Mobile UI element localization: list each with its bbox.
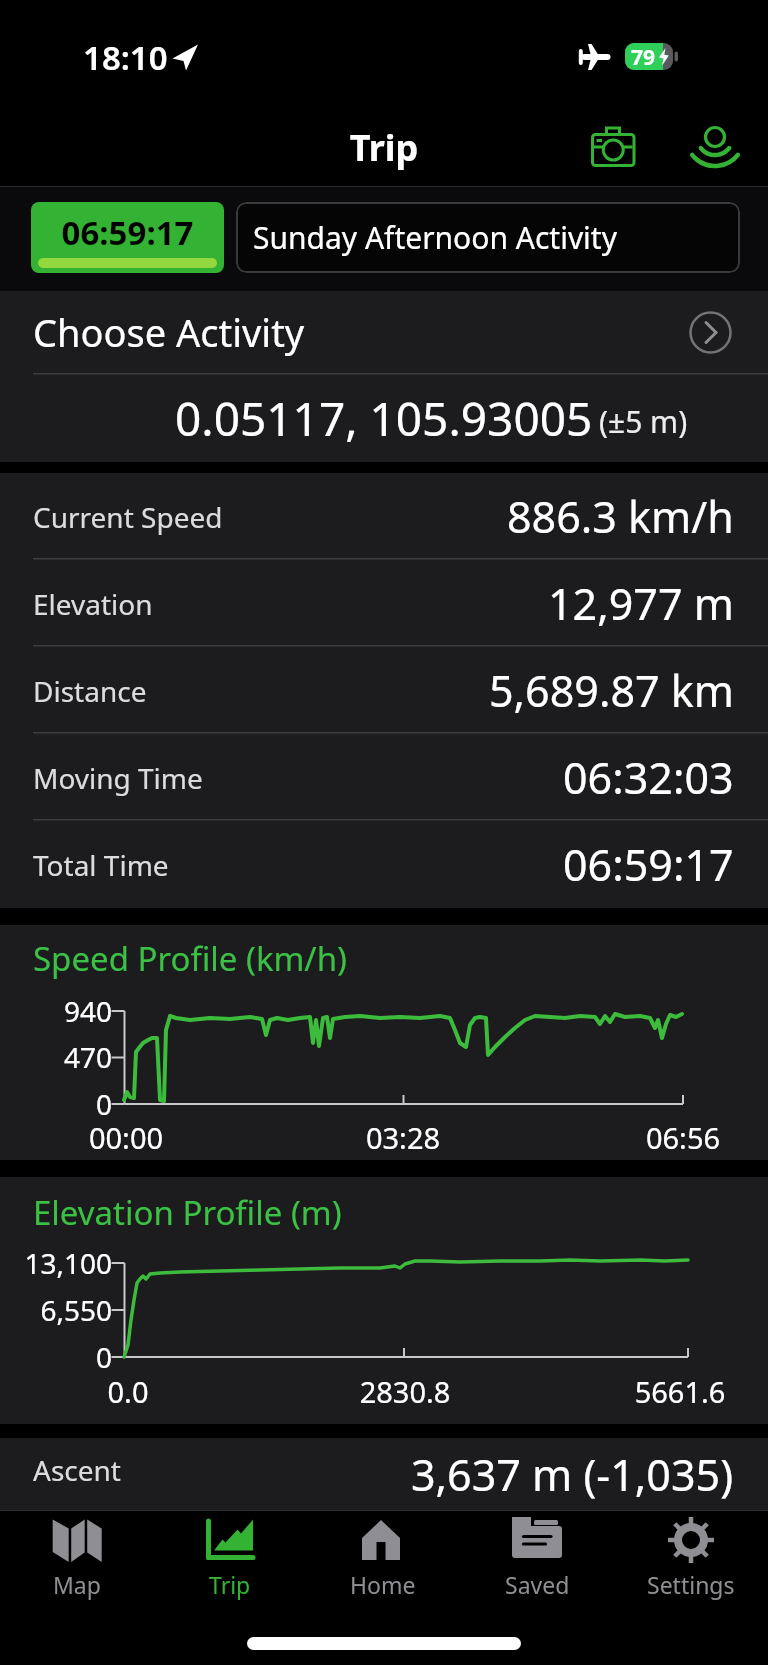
button[interactable]: Choose Activity (0, 291, 768, 374)
staticText: 470 (0, 1038, 112, 1076)
button[interactable]: 06:59:17 (31, 202, 224, 273)
button[interactable]: Settings (614, 1516, 768, 1600)
staticText: Trip (284, 123, 484, 172)
staticText: 0 (0, 1085, 112, 1123)
staticText: 5,689.87 km (489, 661, 734, 720)
staticText: Sunday Afternoon Activity (253, 217, 617, 258)
staticText: Distance (33, 672, 333, 710)
button[interactable]: Home (306, 1516, 460, 1600)
button[interactable] (692, 115, 738, 171)
staticText: 0 (0, 1338, 112, 1376)
staticText: Moving Time (33, 759, 333, 797)
button[interactable]: Map (0, 1516, 153, 1600)
button[interactable] (591, 126, 635, 166)
button[interactable]: Trip (153, 1516, 306, 1600)
staticText: Saved (505, 1569, 570, 1600)
staticText: 2830.8 (355, 1372, 455, 1411)
staticText: 0.05117, 105.93005 (175, 387, 593, 450)
staticText: 18:10 (83, 35, 243, 80)
staticText: 13,100 (0, 1244, 112, 1282)
staticText: Elevation (33, 585, 333, 623)
staticText: 6,550 (0, 1291, 112, 1329)
staticText: 06:59:17 (31, 210, 224, 255)
staticText: Map (53, 1569, 101, 1600)
staticText: 886.3 km/h (507, 487, 734, 546)
staticText: 06:56 (645, 1118, 721, 1157)
staticText: Elevation Profile (m) (33, 1190, 533, 1235)
staticText: Ascent (33, 1451, 333, 1489)
staticText: 940 (0, 992, 112, 1030)
button[interactable]: Sunday Afternoon Activity (236, 202, 740, 273)
staticText: Current Speed (33, 498, 333, 536)
staticText: Total Time (33, 846, 333, 884)
staticText: 03:28 (365, 1118, 441, 1157)
staticText: 0.0 (90, 1372, 166, 1411)
staticText: 5661.6 (630, 1372, 730, 1411)
staticText: (±5 m) (599, 401, 688, 442)
staticText: 12,977 m (548, 574, 734, 633)
staticText: Trip (209, 1569, 251, 1600)
staticText: 79 (627, 43, 659, 72)
staticText: Settings (647, 1569, 735, 1600)
staticText: 06:59:17 (563, 835, 734, 894)
staticText: Home (350, 1569, 416, 1600)
button[interactable]: Saved (460, 1516, 614, 1600)
staticText: 06:32:03 (563, 748, 734, 807)
staticText: Choose Activity (33, 306, 433, 358)
staticText: 3,637 m (-1,035) (411, 1445, 734, 1504)
staticText: Speed Profile (km/h) (33, 936, 533, 981)
staticText: 00:00 (88, 1118, 164, 1157)
